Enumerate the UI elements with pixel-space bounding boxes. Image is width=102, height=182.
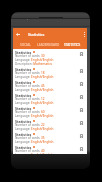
staticText: Language: English/English [15, 75, 54, 79]
button[interactable]: More options [81, 28, 87, 40]
button[interactable]: Bookmark [78, 146, 84, 152]
staticText: Language: English/English [15, 101, 54, 105]
button[interactable]: Bookmark [78, 107, 84, 113]
button[interactable]: Bookmark [78, 51, 84, 57]
button[interactable]: Statistics [13, 79, 87, 92]
staticText: Number of cards: 40 [15, 149, 45, 153]
staticText: Number of cards: 12 [15, 97, 45, 101]
button[interactable]: Bookmark [78, 120, 84, 126]
staticText: STATISTICS [64, 43, 81, 47]
staticText: Statistics [15, 50, 32, 54]
staticText: Number of cards: 45 [15, 84, 45, 88]
staticText: Language: English/English [15, 127, 54, 131]
staticText: Number of cards: 60 [15, 110, 45, 114]
staticText: Number of cards: 18 [15, 71, 45, 75]
staticText: Language: English/English [15, 153, 54, 154]
button[interactable]: Statistics [13, 66, 87, 79]
button[interactable]: Statistics [13, 92, 87, 105]
staticText: Statistics [15, 132, 32, 136]
staticText: Statistics [28, 32, 45, 37]
staticText: Language: English/English [15, 88, 54, 92]
staticText: Description: Mathematics [15, 62, 53, 66]
staticText: Statistics [15, 93, 32, 97]
button[interactable]: LEADERBOARD [37, 43, 60, 47]
button[interactable]: Statistics [13, 118, 87, 131]
button[interactable]: Statistics [13, 49, 87, 66]
staticText: Language: English/English [15, 140, 54, 144]
staticText: Number of cards: 35 [15, 136, 45, 140]
button[interactable]: Bookmark [78, 68, 84, 74]
staticText: Statistics [15, 106, 32, 110]
button[interactable]: Bookmark [78, 94, 84, 100]
button[interactable]: Statistics [13, 105, 87, 118]
staticText: Language: English/English [15, 58, 54, 62]
button[interactable]: Bookmark [78, 81, 84, 87]
button[interactable]: Statistics [13, 131, 87, 144]
staticText: Language: English/English [15, 114, 54, 118]
button[interactable]: Back [13, 28, 23, 40]
button[interactable]: Statistics [13, 144, 87, 154]
button[interactable]: Bookmark [78, 133, 84, 139]
staticText: Statistics [15, 67, 32, 71]
staticText: Number of cards: 22 [15, 123, 45, 127]
staticText: Number of cards: 30 [15, 54, 45, 58]
staticText: Statistics [15, 80, 32, 84]
staticText: SOCIAL [20, 43, 32, 47]
button[interactable]: STATISTICS [64, 43, 81, 47]
staticText: Statistics [15, 145, 32, 149]
staticText: LEADERBOARD [37, 43, 60, 47]
staticText: Statistics [15, 119, 32, 123]
button[interactable]: SOCIAL [20, 43, 32, 47]
